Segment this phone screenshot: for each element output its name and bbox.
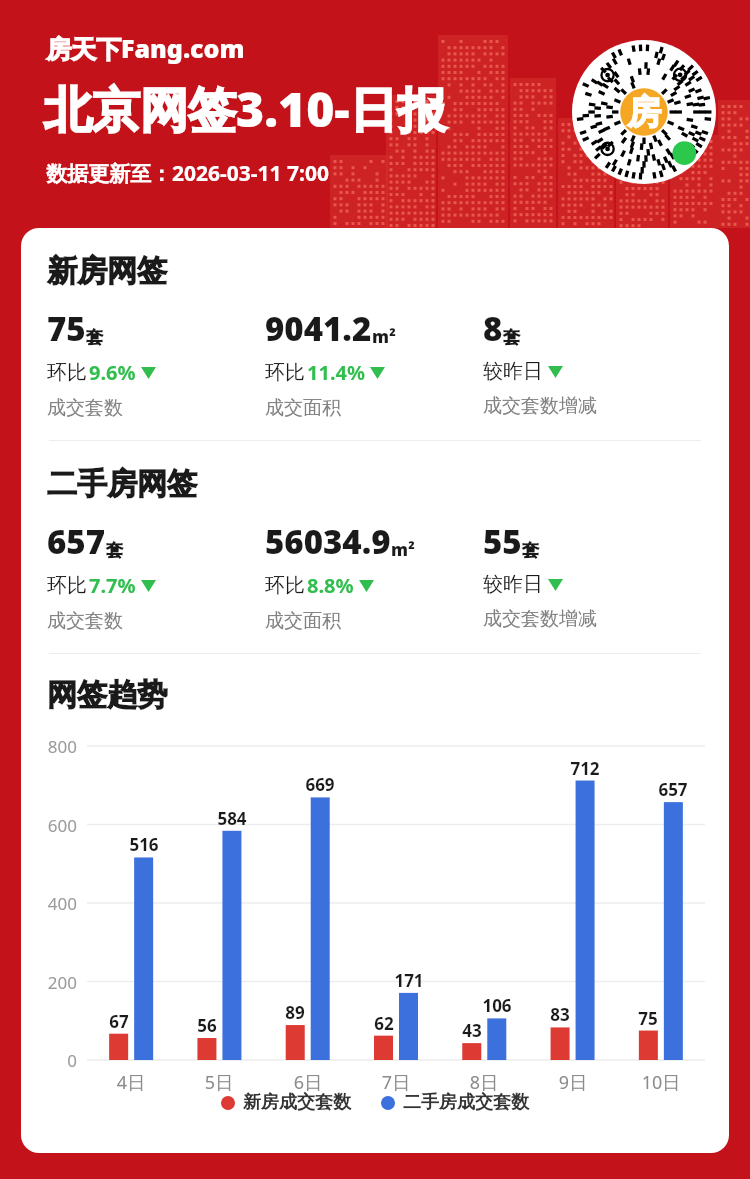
staticText: 4日: [106, 1070, 156, 1095]
staticText: 成交面积: [265, 396, 341, 420]
button[interactable]: 二手房成交套数: [381, 1091, 529, 1114]
staticText: 800: [29, 735, 77, 758]
staticText: 75: [47, 306, 86, 351]
staticText: 657: [653, 778, 693, 801]
staticText: 成交套数: [47, 609, 123, 633]
staticText: 0: [29, 1049, 77, 1072]
staticText: 75: [628, 1007, 668, 1030]
staticText: 新房网签: [47, 252, 167, 290]
staticText: 516: [124, 833, 164, 856]
staticText: 600: [29, 814, 77, 837]
staticText: 56: [187, 1014, 227, 1037]
staticText: 11.4%: [307, 359, 365, 386]
staticText: 10日: [636, 1070, 686, 1095]
staticText: 成交面积: [265, 609, 341, 633]
staticText: 67: [99, 1010, 139, 1033]
staticText: 9日: [548, 1070, 598, 1095]
staticText: 环比: [265, 360, 305, 385]
button[interactable]: 56034.9: [265, 519, 483, 633]
staticText: 套: [106, 540, 123, 561]
button[interactable]: 75: [47, 306, 265, 420]
staticText: 669: [300, 773, 340, 796]
staticText: 较昨日: [483, 359, 543, 384]
button[interactable]: 房天下 Fang.com: [46, 31, 245, 65]
staticText: 9.6%: [89, 359, 136, 386]
staticText: 成交套数: [47, 396, 123, 420]
staticText: 较昨日: [483, 572, 543, 597]
staticText: 二手房网签: [47, 465, 197, 503]
staticText: 83: [540, 1003, 580, 1026]
staticText: 43: [452, 1019, 492, 1042]
staticText: 55: [483, 519, 522, 564]
staticText: 8.8%: [307, 572, 354, 599]
staticText: Fang.com: [121, 31, 245, 65]
staticText: 成交套数增减: [483, 394, 597, 418]
staticText: 二手房成交套数: [403, 1091, 529, 1114]
staticText: 北京网签3.10-日报: [44, 76, 446, 142]
staticText: 89: [275, 1001, 315, 1024]
staticText: 106: [477, 994, 517, 1017]
staticText: 套: [522, 540, 539, 561]
staticText: 套: [86, 327, 103, 348]
button[interactable]: 8: [483, 306, 709, 418]
staticText: 成交套数增减: [483, 607, 597, 631]
staticText: 171: [389, 969, 429, 992]
staticText: 房: [627, 91, 661, 134]
staticText: 新房成交套数: [243, 1091, 351, 1114]
button[interactable]: 55: [483, 519, 709, 631]
staticText: 584: [212, 807, 252, 830]
staticText: 环比: [265, 573, 305, 598]
staticText: 657: [47, 519, 106, 564]
staticText: 56034.9: [265, 519, 391, 564]
staticText: 9041.2: [265, 306, 372, 351]
button[interactable]: 657: [47, 519, 265, 633]
staticText: 数据更新至：2026-03-11 7:00: [46, 159, 329, 188]
button[interactable]: 9041.2: [265, 306, 483, 420]
staticText: 环比: [47, 360, 87, 385]
staticText: m²: [372, 325, 396, 348]
staticText: 62: [364, 1012, 404, 1035]
staticText: m²: [391, 538, 415, 561]
staticText: 房天下: [46, 34, 121, 65]
staticText: 400: [29, 892, 77, 915]
button[interactable]: 小程序二维码: [572, 40, 716, 184]
staticText: 网签趋势: [47, 676, 167, 714]
button[interactable]: 新房成交套数: [221, 1091, 351, 1114]
staticText: 6日: [283, 1070, 333, 1095]
staticText: 5日: [194, 1070, 244, 1095]
staticText: 环比: [47, 573, 87, 598]
staticText: 套: [503, 327, 520, 348]
staticText: 200: [29, 971, 77, 994]
staticText: 712: [565, 757, 605, 780]
staticText: 7.7%: [89, 572, 136, 599]
staticText: 7日: [371, 1070, 421, 1095]
staticText: 8: [483, 306, 503, 351]
staticText: 8日: [459, 1070, 509, 1095]
